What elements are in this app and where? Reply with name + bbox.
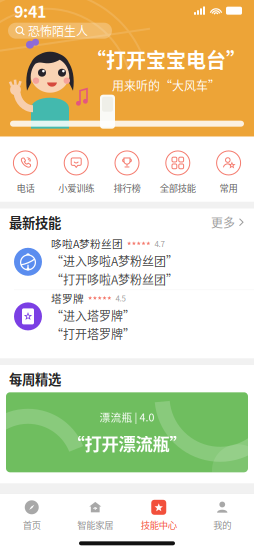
staticText: 4.7 [154,238,164,249]
button[interactable]: 首页 [0,500,63,531]
staticText: 4.5 [115,292,125,304]
staticText: 每周精选 [9,369,61,388]
staticText: 技能中心 [141,518,177,531]
staticText: 最新技能 [9,212,61,232]
button[interactable]: 技能中心 [127,500,190,531]
staticText: “打开宝宝电台” [86,45,246,74]
staticText: 塔罗牌 [51,290,84,306]
staticText: 恐怖陌生人 [28,22,88,39]
button[interactable]: 搜索 [8,23,112,39]
staticText: 哆啦A梦粉丝团 [51,236,123,251]
staticText: 电话 [16,181,34,194]
button[interactable]: 我的 [190,500,254,531]
staticText: 9:41 [14,0,46,22]
staticText: 常用 [220,181,238,194]
staticText: 用来听的“大风车” [112,77,220,94]
button[interactable]: 常用 [203,151,254,194]
button[interactable]: 更多 [211,213,244,231]
staticText: 排行榜 [113,181,140,194]
staticText: “进入塔罗牌” [51,307,135,324]
staticText: 智能家居 [77,518,113,531]
button[interactable]: 排行榜 [102,151,152,194]
button[interactable]: 漂流瓶 | 4.0 [0,392,254,472]
staticText: “打开漂流瓶” [67,430,186,456]
button[interactable]: 电话 [0,151,51,194]
staticText: 我的 [213,518,231,531]
staticText: 首页 [23,518,41,531]
staticText: 更多 [211,213,235,231]
button[interactable]: 哆啦A梦粉丝团 [0,236,254,290]
staticText: 小爱训练 [58,181,94,194]
staticText: “进入哆啦A梦粉丝团” [51,252,178,269]
staticText: “打开塔罗牌” [51,325,135,342]
button[interactable]: 智能家居 [63,500,127,531]
staticText: “打开哆啦A梦粉丝团” [51,270,178,288]
button[interactable]: 塔罗牌 [0,290,254,344]
staticText: 漂流瓶 | 4.0 [99,409,154,424]
button[interactable]: 全部技能 [152,151,203,194]
button[interactable]: 小爱训练 [51,151,102,194]
staticText: 全部技能 [160,181,196,194]
